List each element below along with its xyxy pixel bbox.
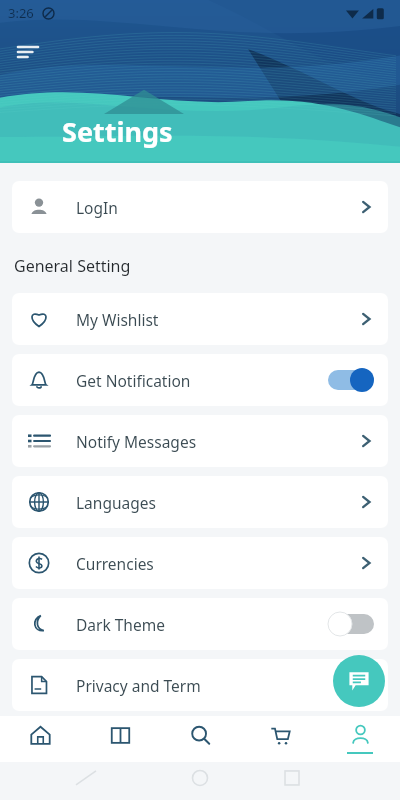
button[interactable]: Search — [160, 716, 240, 762]
staticText: 3:26 — [8, 4, 34, 22]
button[interactable]: Cart — [240, 716, 320, 762]
button[interactable]: Home — [0, 716, 80, 762]
button[interactable]: Catalog — [80, 716, 160, 762]
staticText: Notify Messages — [76, 431, 197, 452]
button[interactable]: Languages — [12, 476, 388, 528]
button[interactable]: Get Notification — [12, 354, 388, 406]
button[interactable]: Notify Messages — [12, 415, 388, 467]
staticText: General Setting — [14, 255, 131, 277]
staticText: Privacy and Term — [76, 675, 201, 696]
staticText: Currencies — [76, 553, 154, 574]
button[interactable]: LogIn — [12, 181, 388, 233]
button[interactable]: My Wishlist — [12, 293, 388, 345]
button[interactable]: Chat — [333, 655, 385, 707]
button[interactable]: Currencies — [12, 537, 388, 589]
button[interactable]: Privacy and Term — [12, 659, 388, 711]
button[interactable]: Profile — [320, 716, 400, 762]
staticText: Languages — [76, 492, 156, 513]
button[interactable]: Menu — [12, 36, 44, 68]
staticText: Dark Theme — [76, 614, 165, 635]
button[interactable]: Dark Theme — [12, 598, 388, 650]
staticText: LogIn — [76, 197, 118, 218]
staticText: Settings — [62, 113, 173, 150]
staticText: My Wishlist — [76, 309, 159, 330]
staticText: Get Notification — [76, 370, 191, 391]
